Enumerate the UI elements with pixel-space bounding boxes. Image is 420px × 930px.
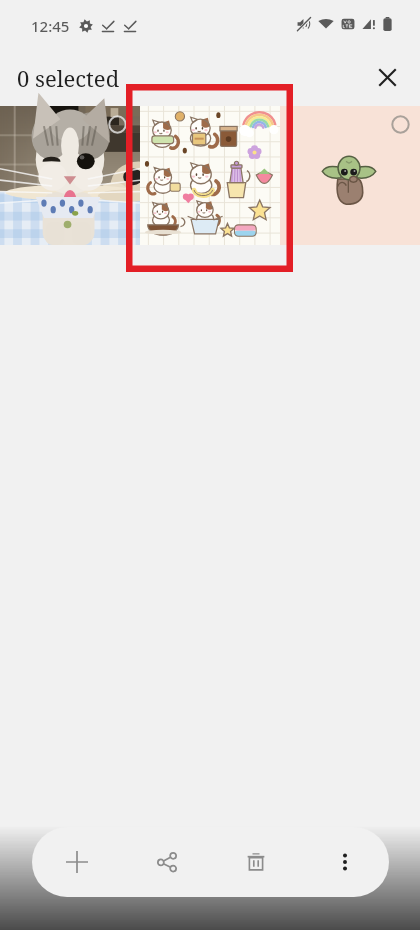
button[interactable]: Delete	[211, 827, 300, 897]
button[interactable]: Cat photo, not selected	[0, 106, 140, 245]
button[interactable]: More options	[300, 827, 389, 897]
button[interactable]: Share	[122, 827, 211, 897]
staticText: 12:45	[31, 16, 70, 36]
button[interactable]: Close selection	[371, 61, 403, 93]
button[interactable]: Grogu drawing, not selected	[280, 106, 420, 245]
button[interactable]: Add	[32, 827, 122, 897]
staticText: 0 selected	[17, 63, 120, 93]
button[interactable]: Sticker sheet, selected	[140, 106, 280, 245]
